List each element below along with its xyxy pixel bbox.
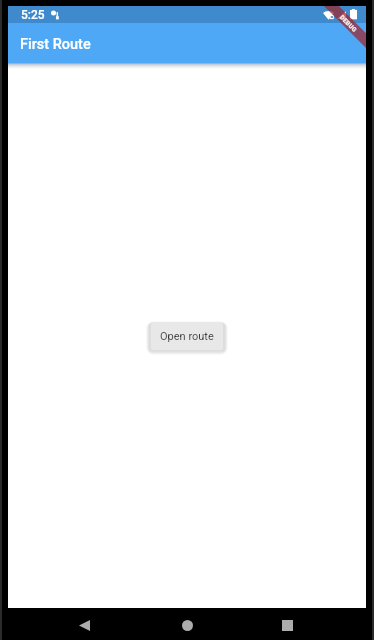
button[interactable]: Back (67, 609, 101, 640)
staticText: First Route (20, 36, 91, 53)
staticText: 5:25 (21, 8, 45, 22)
button[interactable]: Open route (151, 323, 223, 350)
button[interactable]: Recent apps (270, 609, 304, 640)
button[interactable]: Home (170, 609, 204, 640)
staticText: Open route (160, 330, 214, 343)
